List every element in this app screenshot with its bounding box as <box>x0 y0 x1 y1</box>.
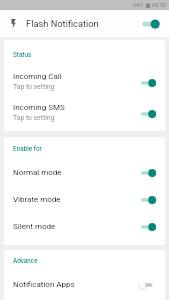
button[interactable]: Incoming Call <box>4 67 165 98</box>
button[interactable]: Enable flash notification <box>134 13 166 35</box>
button[interactable]: Normal mode <box>4 159 165 186</box>
staticText: Vibrate mode <box>13 195 61 204</box>
staticText: Incoming SMS <box>13 103 65 112</box>
button[interactable]: Silent mode <box>4 213 165 240</box>
staticText: Flash Notification <box>26 18 99 29</box>
staticText: 00:30 <box>152 2 166 9</box>
other: Flash <box>11 19 16 28</box>
staticText: Advance <box>13 257 38 265</box>
staticText: Status <box>13 51 32 59</box>
staticText: Enable for <box>13 145 42 153</box>
staticText: 66% <box>133 2 144 9</box>
staticText: Incoming Call <box>13 72 62 81</box>
staticText: Normal mode <box>13 168 62 177</box>
staticText: Tap to setting <box>13 114 55 122</box>
button[interactable]: Notification Apps <box>4 270 165 299</box>
button[interactable]: Incoming SMS <box>4 98 165 129</box>
staticText: Notification Apps <box>13 280 75 289</box>
button[interactable]: Vibrate mode <box>4 186 165 213</box>
staticText: Tap to setting <box>13 83 55 91</box>
staticText: Silent mode <box>13 222 56 231</box>
